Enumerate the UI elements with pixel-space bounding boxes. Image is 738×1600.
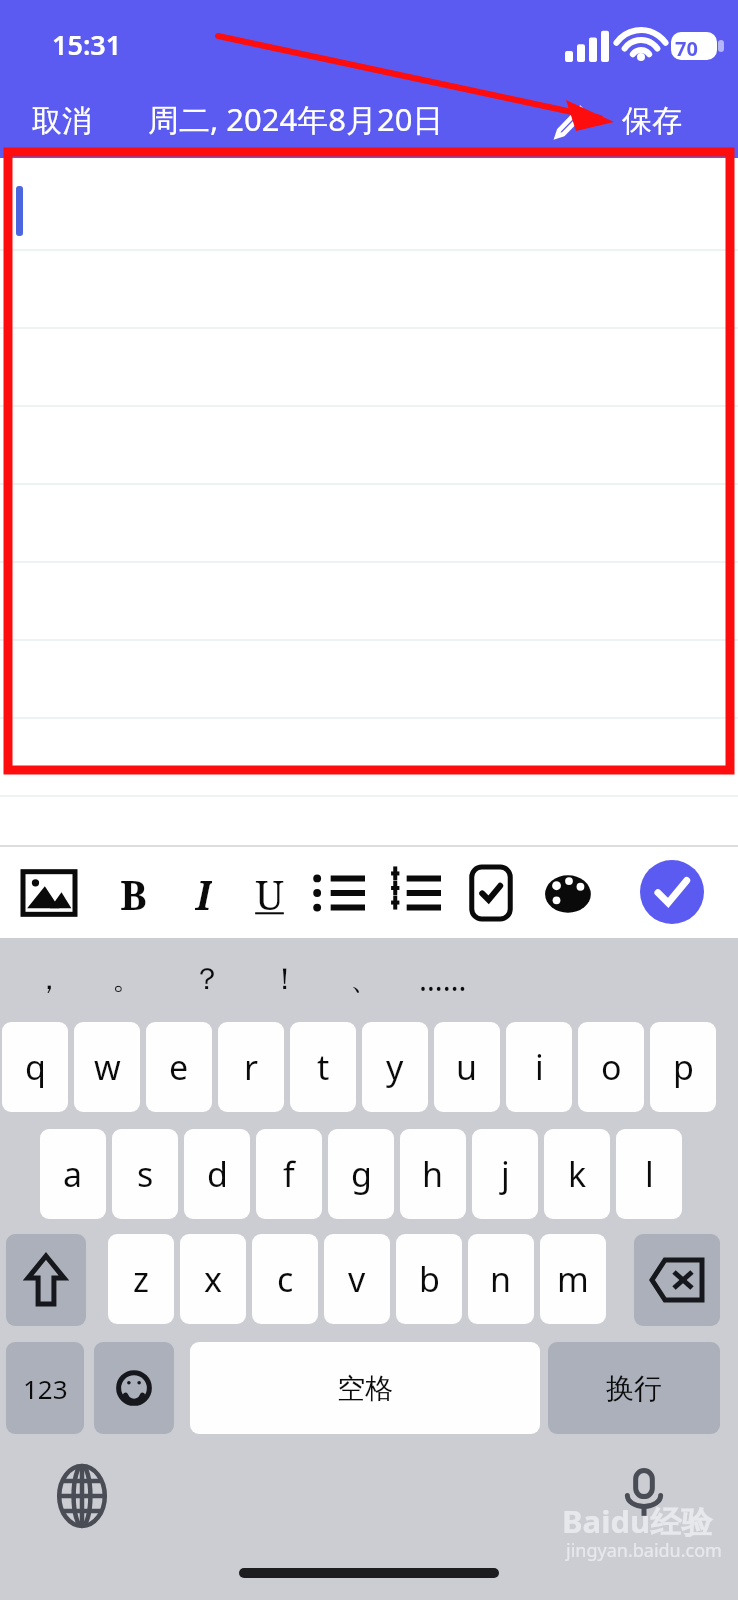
button[interactable]: Backspace <box>634 1234 720 1326</box>
button[interactable]: b <box>396 1234 462 1324</box>
staticText: U <box>255 867 284 919</box>
staticText: j <box>501 1151 510 1197</box>
staticText: d <box>207 1151 228 1197</box>
staticText: p <box>673 1044 694 1090</box>
button[interactable]: Insert image <box>18 862 80 924</box>
staticText: v <box>348 1256 366 1302</box>
button[interactable]: c <box>252 1234 318 1324</box>
staticText: n <box>490 1256 512 1302</box>
button[interactable]: w <box>74 1022 140 1112</box>
button[interactable]: 保存 <box>614 98 690 144</box>
button[interactable]: m <box>540 1234 606 1324</box>
button[interactable]: Change keyboard <box>44 1458 120 1534</box>
button[interactable]: n <box>468 1234 534 1324</box>
staticText: I <box>195 867 212 919</box>
button[interactable]: …… <box>408 948 478 1010</box>
staticText: 70 <box>675 35 698 62</box>
button[interactable]: q <box>2 1022 68 1112</box>
button[interactable]: l <box>616 1129 682 1219</box>
button[interactable]: Emoji <box>94 1342 174 1434</box>
button[interactable]: 换行 <box>548 1342 720 1434</box>
staticText: m <box>557 1256 589 1302</box>
staticText: g <box>351 1151 372 1197</box>
button[interactable]: i <box>506 1022 572 1112</box>
staticText: e <box>169 1044 189 1090</box>
button[interactable]: k <box>544 1129 610 1219</box>
staticText: 123 <box>23 1371 68 1406</box>
button[interactable]: 。 <box>92 948 162 1010</box>
staticText: c <box>277 1256 294 1302</box>
staticText: y <box>386 1044 404 1090</box>
staticText: q <box>25 1044 46 1090</box>
button[interactable]: a <box>40 1129 106 1219</box>
button[interactable]: Bold <box>102 862 164 924</box>
staticText: 换行 <box>606 1371 662 1406</box>
button[interactable]: x <box>180 1234 246 1324</box>
staticText: Baidu经验 <box>562 1500 713 1542</box>
staticText: 。 <box>112 960 142 998</box>
button[interactable]: o <box>578 1022 644 1112</box>
button[interactable]: Colors <box>538 862 600 924</box>
staticText: …… <box>419 959 467 1000</box>
button[interactable]: Underline <box>238 862 300 924</box>
staticText: z <box>133 1256 149 1302</box>
staticText: w <box>94 1044 121 1090</box>
staticText: 保存 <box>622 102 682 140</box>
button[interactable]: 123 <box>6 1342 84 1434</box>
staticText: a <box>63 1151 83 1197</box>
button[interactable]: Shift <box>6 1234 86 1326</box>
button[interactable]: 取消 <box>24 98 100 144</box>
staticText: 取消 <box>32 102 92 140</box>
button[interactable]: f <box>256 1129 322 1219</box>
button[interactable]: r <box>218 1022 284 1112</box>
staticText: k <box>568 1151 587 1197</box>
button[interactable]: s <box>112 1129 178 1219</box>
button[interactable]: p <box>650 1022 716 1112</box>
button[interactable]: u <box>434 1022 500 1112</box>
button[interactable]: 空格 <box>190 1342 540 1434</box>
button[interactable]: g <box>328 1129 394 1219</box>
button[interactable]: Voice input <box>604 1454 684 1534</box>
staticText: ， <box>34 960 64 998</box>
staticText: b <box>419 1256 440 1302</box>
staticText: 空格 <box>337 1371 393 1406</box>
button[interactable]: z <box>108 1234 174 1324</box>
staticText: ！ <box>270 960 300 998</box>
button[interactable]: e <box>146 1022 212 1112</box>
button[interactable]: Bulleted list <box>308 862 370 924</box>
staticText: 15:31 <box>52 26 122 63</box>
staticText: h <box>422 1151 444 1197</box>
button[interactable]: Italic <box>172 862 234 924</box>
button[interactable]: j <box>472 1129 538 1219</box>
staticText: jingyan.baidu.com <box>566 1538 722 1563</box>
button[interactable]: h <box>400 1129 466 1219</box>
button[interactable]: 、 <box>330 948 400 1010</box>
button[interactable]: y <box>362 1022 428 1112</box>
button[interactable]: ！ <box>250 948 320 1010</box>
staticText: i <box>535 1044 544 1090</box>
staticText: f <box>283 1151 295 1197</box>
button[interactable]: t <box>290 1022 356 1112</box>
staticText: ？ <box>192 960 222 998</box>
button[interactable]: Numbered list <box>384 862 446 924</box>
staticText: 、 <box>350 960 380 998</box>
button[interactable]: Edit title <box>548 100 592 144</box>
button[interactable]: v <box>324 1234 390 1324</box>
staticText: t <box>317 1044 330 1090</box>
staticText: u <box>456 1044 478 1090</box>
button[interactable]: Checklist <box>460 862 522 924</box>
staticText: s <box>137 1151 154 1197</box>
staticText: o <box>601 1044 622 1090</box>
button[interactable]: d <box>184 1129 250 1219</box>
button[interactable]: Confirm <box>640 860 704 924</box>
button[interactable]: ， <box>14 948 84 1010</box>
button[interactable]: ？ <box>172 948 242 1010</box>
staticText: l <box>645 1151 654 1197</box>
staticText: x <box>204 1256 222 1302</box>
staticText: 周二, 2024年8月20日 <box>148 98 444 140</box>
staticText: B <box>120 867 147 919</box>
staticText: r <box>244 1044 259 1090</box>
